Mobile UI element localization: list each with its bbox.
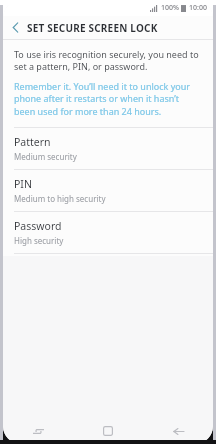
- button[interactable]: Home: [73, 418, 143, 444]
- button[interactable]: Password: [3, 212, 213, 253]
- button[interactable]: Back: [3, 16, 27, 39]
- staticText: Medium security: [14, 151, 77, 162]
- staticText: High security: [14, 235, 64, 246]
- button[interactable]: PIN: [3, 170, 213, 211]
- staticText: 100%: [161, 3, 179, 13]
- staticText: Pattern: [14, 135, 51, 149]
- button[interactable]: Recents: [3, 418, 73, 444]
- staticText: To use iris recognition securely, you ne…: [14, 48, 202, 73]
- staticText: Remember it. You’ll need it to unlock yo…: [14, 80, 202, 118]
- button[interactable]: Pattern: [3, 128, 213, 169]
- staticText: PIN: [14, 177, 32, 191]
- staticText: Medium to high security: [14, 193, 106, 204]
- staticText: SET SECURE SCREEN LOCK: [27, 21, 158, 35]
- button[interactable]: Back: [143, 418, 213, 444]
- staticText: 10:00: [189, 3, 207, 13]
- staticText: Password: [14, 219, 62, 233]
